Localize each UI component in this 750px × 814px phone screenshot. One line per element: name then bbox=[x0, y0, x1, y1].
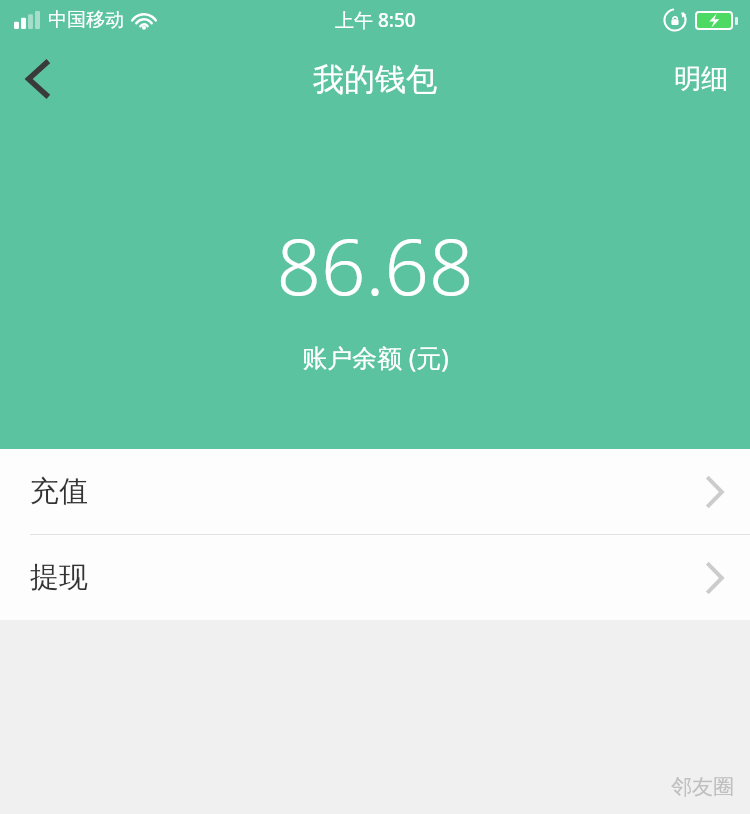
staticText: 账户余额 (元) bbox=[302, 340, 449, 374]
staticText: 邻友圈 bbox=[671, 774, 734, 800]
staticText: 中国移动 bbox=[48, 8, 124, 32]
staticText: 充值 bbox=[30, 473, 88, 510]
staticText: 86.68 bbox=[276, 212, 474, 318]
staticText: 上午 8:50 bbox=[335, 7, 416, 33]
button[interactable]: 充值 bbox=[0, 449, 750, 534]
button[interactable]: 提现 bbox=[0, 535, 750, 620]
staticText: 明细 bbox=[674, 62, 728, 96]
button[interactable]: Back bbox=[0, 41, 76, 117]
other: Rotation lock bbox=[663, 8, 687, 32]
staticText: 提现 bbox=[30, 559, 88, 596]
button[interactable]: 明细 bbox=[652, 40, 750, 118]
staticText: 我的钱包 bbox=[313, 60, 437, 99]
